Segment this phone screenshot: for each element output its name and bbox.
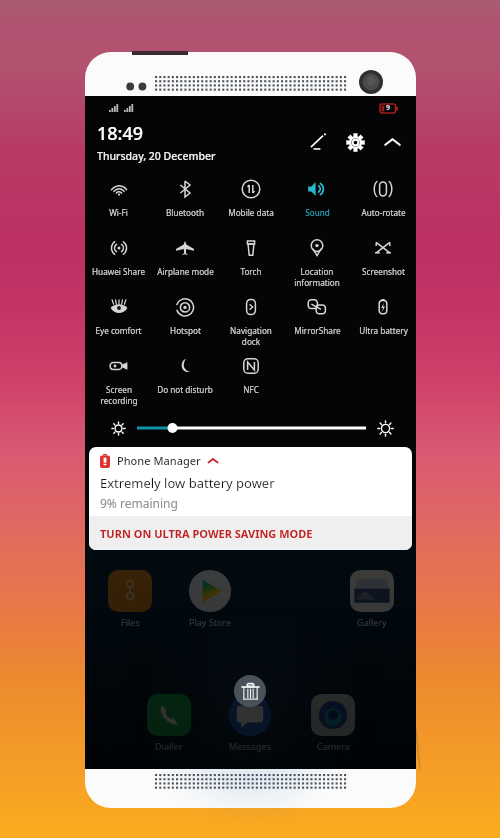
staticText: Auto-rotate	[361, 207, 406, 218]
button[interactable]: Eye comfort	[85, 286, 152, 345]
button[interactable]: Settings	[339, 126, 371, 158]
staticText: Do not disturb	[157, 384, 213, 395]
staticText: Mobile data	[228, 207, 274, 218]
staticText: 9% remaining	[100, 495, 178, 511]
staticText: Bluetooth	[166, 207, 204, 218]
staticText: Messages	[229, 740, 271, 752]
staticText: 9	[386, 103, 391, 113]
staticText: Navigation dock	[230, 325, 272, 345]
button[interactable]: Messages	[210, 694, 290, 752]
button[interactable]: Sound	[284, 168, 350, 227]
button[interactable]: Screenshot	[350, 227, 416, 286]
button[interactable]: TURN ON ULTRA POWER SAVING MODE	[89, 516, 412, 550]
staticText: Files	[121, 616, 140, 628]
button[interactable]: Play Store	[170, 570, 250, 628]
staticText: Phone Manager	[117, 453, 201, 468]
staticText: Thursday, 20 December	[97, 149, 216, 163]
staticText: MirrorShare	[294, 325, 341, 336]
staticText: Hotspot	[170, 325, 201, 336]
button[interactable]: Auto-rotate	[350, 168, 416, 227]
button[interactable]: Dialler	[129, 694, 209, 752]
staticText: Huawei Share	[92, 266, 145, 277]
button[interactable]: Gallery	[332, 570, 412, 628]
staticText: Eye comfort	[95, 325, 142, 336]
staticText: NFC	[243, 384, 259, 395]
button[interactable]: MirrorShare	[284, 286, 350, 345]
staticText: 18:49	[97, 121, 144, 146]
staticText: Extremely low battery power	[100, 474, 275, 492]
staticText: Wi-Fi	[109, 207, 128, 218]
button[interactable]: Do not disturb	[152, 345, 218, 415]
staticText: Play Store	[189, 616, 231, 628]
button[interactable]: Airplane mode	[152, 227, 218, 286]
button[interactable]: Delete	[234, 675, 266, 707]
button[interactable]: Location information	[284, 227, 350, 286]
button[interactable]: Mobile data	[218, 168, 284, 227]
button[interactable]: Navigation dock	[218, 286, 284, 345]
button[interactable]: Bluetooth	[152, 168, 218, 227]
staticText: TURN ON ULTRA POWER SAVING MODE	[100, 526, 313, 541]
button[interactable]: Phone Manager	[89, 447, 412, 550]
staticText: Ultra battery	[359, 325, 408, 336]
button[interactable]: Camera	[293, 694, 373, 752]
button[interactable]: Edit quick settings	[302, 126, 334, 158]
button[interactable]: Files	[90, 570, 170, 628]
staticText: Airplane mode	[157, 266, 214, 277]
staticText: Dialler	[155, 740, 183, 752]
button[interactable]: Wi-Fi	[85, 168, 152, 227]
button[interactable]: Collapse	[376, 126, 408, 158]
button[interactable]: Hotspot	[152, 286, 218, 345]
button[interactable]: NFC	[218, 345, 284, 415]
button[interactable]: Ultra battery	[350, 286, 416, 345]
button[interactable]: Brightness	[137, 420, 366, 436]
button[interactable]: Torch	[218, 227, 284, 286]
staticText: Gallery	[357, 616, 387, 628]
button[interactable]: Screen recording	[85, 345, 152, 415]
button[interactable]: Huawei Share	[85, 227, 152, 286]
staticText: Screen recording	[100, 384, 138, 406]
staticText: Camera	[317, 740, 350, 752]
staticText: Sound	[305, 207, 330, 218]
staticText: Location information	[294, 266, 340, 286]
staticText: Torch	[240, 266, 262, 277]
staticText: Screenshot	[362, 266, 405, 277]
